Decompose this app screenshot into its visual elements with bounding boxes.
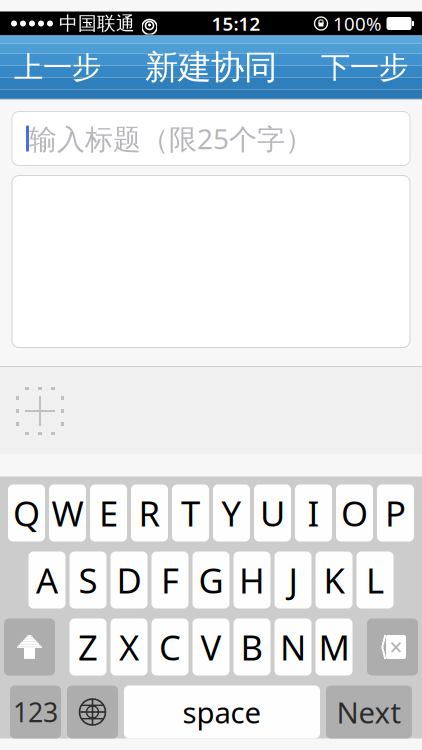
- staticText: C: [159, 624, 181, 670]
- button[interactable]: G: [192, 551, 229, 608]
- button[interactable]: Z: [69, 618, 106, 675]
- staticText: F: [161, 557, 179, 603]
- staticText: 新建协同: [145, 47, 277, 88]
- button[interactable]: 下一步: [307, 37, 422, 97]
- staticText: S: [78, 557, 97, 603]
- button[interactable]: I: [295, 484, 332, 541]
- button[interactable]: K: [315, 551, 352, 608]
- staticText: W: [51, 490, 83, 536]
- button[interactable]: O: [336, 484, 373, 541]
- button[interactable]: W: [49, 484, 86, 541]
- button[interactable]: space: [124, 685, 320, 738]
- button[interactable]: Shift: [4, 618, 55, 675]
- staticText: K: [323, 557, 344, 603]
- button[interactable]: R: [131, 484, 168, 541]
- staticText: 下一步: [321, 49, 408, 85]
- button[interactable]: F: [151, 551, 188, 608]
- button[interactable]: B: [233, 618, 270, 675]
- staticText: T: [181, 490, 200, 536]
- staticText: X: [119, 624, 139, 670]
- staticText: V: [200, 624, 221, 670]
- staticText: P: [385, 490, 406, 536]
- button[interactable]: A: [28, 551, 65, 608]
- staticText: L: [366, 557, 384, 603]
- staticText: D: [116, 557, 141, 603]
- button[interactable]: Q: [8, 484, 45, 541]
- button[interactable]: Next keyboard: [67, 685, 118, 738]
- staticText: Q: [13, 490, 40, 536]
- button[interactable]: J: [274, 551, 311, 608]
- button[interactable]: N: [274, 618, 311, 675]
- button[interactable]: 123: [10, 685, 61, 738]
- staticText: ×: [389, 632, 402, 662]
- staticText: U: [260, 490, 285, 536]
- staticText: Z: [78, 624, 98, 670]
- button[interactable]: S: [69, 551, 106, 608]
- button[interactable]: E: [90, 484, 127, 541]
- staticText: R: [138, 490, 160, 536]
- staticText: 中国联通: [59, 12, 135, 35]
- button[interactable]: D: [110, 551, 147, 608]
- button[interactable]: M: [315, 618, 352, 675]
- button[interactable]: T: [172, 484, 209, 541]
- staticText: E: [99, 490, 118, 536]
- staticText: 123: [13, 694, 58, 730]
- staticText: 上一步: [14, 49, 101, 85]
- button[interactable]: V: [192, 618, 229, 675]
- button[interactable]: 上一步: [0, 37, 115, 97]
- button[interactable]: 输入标题（限25个字）: [12, 111, 410, 165]
- button[interactable]: Next: [326, 685, 412, 738]
- button[interactable]: C: [151, 618, 188, 675]
- staticText: N: [280, 624, 306, 670]
- staticText: I: [307, 490, 319, 536]
- button[interactable]: P: [377, 484, 414, 541]
- staticText: 100%: [333, 11, 382, 36]
- button[interactable]: [12, 175, 410, 347]
- staticText: 15:12: [211, 11, 260, 36]
- button[interactable]: L: [356, 551, 393, 608]
- button[interactable]: H: [233, 551, 270, 608]
- button[interactable]: Delete: [367, 618, 418, 675]
- staticText: 输入标题（限25个字）: [29, 120, 313, 157]
- staticText: space: [182, 692, 261, 731]
- staticText: Next: [336, 692, 401, 731]
- staticText: B: [240, 624, 263, 670]
- staticText: A: [36, 557, 58, 603]
- staticText: H: [239, 557, 265, 603]
- staticText: J: [288, 557, 297, 603]
- staticText: G: [198, 557, 223, 603]
- button[interactable]: X: [110, 618, 147, 675]
- staticText: Y: [221, 490, 241, 536]
- button[interactable]: Add attachment: [0, 367, 64, 455]
- staticText: M: [318, 624, 349, 670]
- button[interactable]: U: [254, 484, 291, 541]
- button[interactable]: Y: [213, 484, 250, 541]
- staticText: O: [341, 490, 368, 536]
